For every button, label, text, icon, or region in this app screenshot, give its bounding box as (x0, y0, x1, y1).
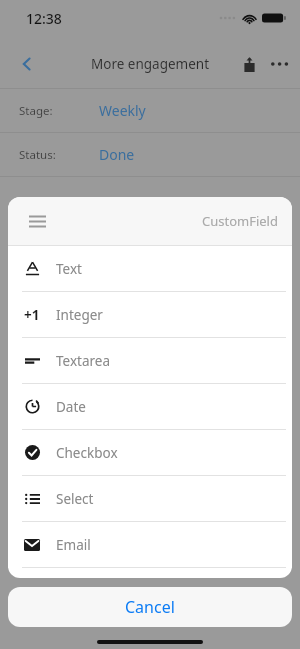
staticText: Text (56, 260, 82, 278)
staticText: Weekly (99, 101, 146, 120)
staticText: Integer (56, 306, 103, 324)
button[interactable]: Email (8, 522, 292, 567)
button[interactable]: Select (8, 476, 292, 521)
button[interactable]: Stage: (0, 89, 300, 132)
staticText: Checkbox (56, 444, 118, 462)
button[interactable]: Checkbox (8, 430, 292, 475)
staticText: Stage: (19, 103, 83, 119)
button[interactable]: Cancel (8, 587, 292, 627)
staticText: Date (56, 398, 86, 416)
button[interactable]: Menu (20, 204, 54, 238)
staticText: CustomField (202, 212, 278, 230)
button[interactable]: Textarea (8, 338, 292, 383)
staticText: Cancel (125, 596, 175, 618)
staticText: Email (56, 536, 91, 554)
staticText: Textarea (56, 352, 110, 370)
staticText: More engagement (91, 55, 210, 73)
button[interactable]: Status: (0, 133, 300, 176)
staticText: 12:38 (26, 9, 62, 28)
staticText: Select (56, 490, 94, 508)
staticText: Status: (19, 147, 83, 163)
button[interactable]: More options (264, 49, 294, 79)
button[interactable]: Date (8, 384, 292, 429)
staticText: +1 (24, 306, 40, 324)
staticText: Done (99, 145, 135, 164)
button[interactable]: Text (8, 246, 292, 291)
button[interactable]: +1 (8, 292, 292, 337)
button[interactable]: Back (10, 47, 44, 81)
button[interactable]: Share (234, 49, 264, 79)
